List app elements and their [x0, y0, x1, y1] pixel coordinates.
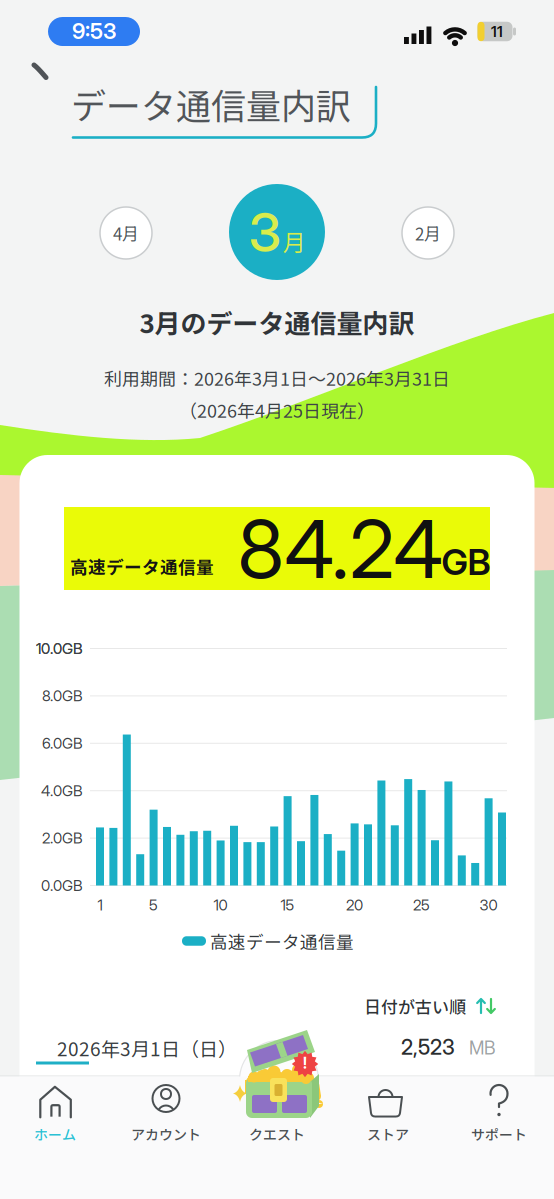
button[interactable]: クエスト [222, 1075, 332, 1145]
staticText: 4.0GB [41, 782, 83, 800]
staticText: GB [441, 540, 490, 584]
button[interactable]: ホーム [0, 1075, 110, 1145]
button[interactable]: ストア [333, 1075, 443, 1145]
staticText: 高速データ通信量 [210, 928, 354, 954]
staticText: （2026年4月25日現在） [179, 397, 375, 423]
staticText: ストア [367, 1124, 409, 1144]
staticText: アカウント [131, 1124, 201, 1144]
staticText: 20 [346, 896, 363, 914]
staticText: 84.24 [237, 501, 442, 597]
staticText: 3 [248, 199, 281, 265]
button[interactable]: 3 [229, 184, 325, 280]
staticText: 9:53 [72, 18, 116, 44]
staticText: 11 [491, 22, 503, 40]
staticText: 5 [149, 896, 158, 914]
staticText: サポート [471, 1124, 527, 1144]
staticText: 2,523 [401, 1034, 455, 1060]
staticText: 30 [480, 896, 498, 914]
staticText: 6.0GB [42, 734, 83, 752]
staticText: 8.0GB [42, 687, 83, 705]
staticText: 4月 [113, 221, 139, 245]
staticText: 2.0GB [42, 829, 83, 847]
staticText: クエスト [249, 1124, 305, 1144]
button[interactable]: アカウント [111, 1075, 221, 1145]
staticText: 2026年3月1日（日） [57, 1034, 237, 1062]
staticText: ホーム [34, 1124, 76, 1144]
staticText: 10.0GB [36, 639, 83, 657]
button[interactable]: 4月 [100, 207, 152, 259]
staticText: 日付が古い順 [364, 994, 466, 1018]
staticText: 2月 [415, 221, 441, 245]
staticText: 月 [282, 224, 305, 258]
staticText: 高速データ通信量 [70, 553, 214, 579]
staticText: ! [303, 1053, 307, 1073]
staticText: データ通信量内訳 [71, 79, 351, 129]
staticText: 15 [281, 896, 295, 914]
staticText: 3月のデータ通信量内訳 [139, 303, 414, 341]
staticText: MB [469, 1037, 495, 1059]
button[interactable]: 日付が古い順 [364, 994, 496, 1018]
button[interactable]: 2月 [402, 207, 454, 259]
staticText: 1 [97, 896, 102, 914]
staticText: 利用期間：2026年3月1日〜2026年3月31日 [104, 365, 450, 391]
staticText: 25 [413, 896, 430, 914]
staticText: 10 [214, 896, 228, 914]
button[interactable]: サポート [444, 1075, 554, 1145]
staticText: 0.0GB [41, 876, 83, 894]
staticText: 10.0GB [36, 639, 83, 657]
